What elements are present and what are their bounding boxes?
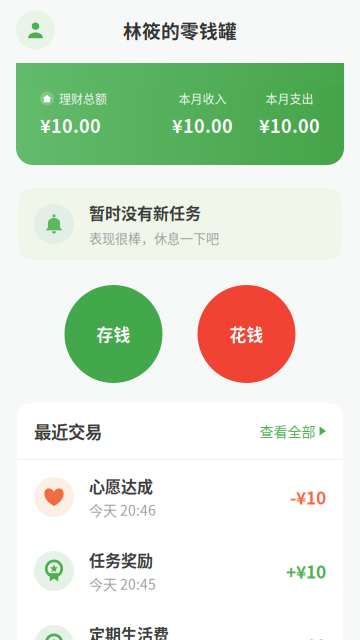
staticText: 本月支出	[265, 90, 313, 107]
staticText: ¥10.00	[172, 112, 233, 138]
staticText: 任务奖励	[89, 548, 153, 571]
staticText: ¥10.00	[40, 112, 101, 138]
button[interactable]: 花钱	[197, 285, 295, 383]
staticText: ¥10.00	[259, 112, 320, 138]
staticText: 定期生活费	[89, 622, 169, 640]
button[interactable]: 查看全部	[259, 421, 326, 441]
staticText: 今天 20:46	[89, 499, 156, 520]
button[interactable]: 暂时没有新任务	[18, 188, 342, 260]
button[interactable]: 任务奖励	[17, 534, 343, 608]
button[interactable]: 个人中心	[16, 10, 55, 49]
staticText: 表现很棒，休息一下吧	[89, 228, 219, 247]
staticText: 存钱	[96, 322, 130, 346]
button[interactable]: 心愿达成	[17, 460, 343, 534]
staticText: 最近交易	[34, 418, 102, 444]
staticText: 心愿达成	[89, 474, 153, 497]
staticText: 本月收入	[178, 90, 226, 107]
staticText: +¥10	[286, 558, 326, 584]
staticText: 花钱	[229, 322, 263, 346]
staticText: -¥10	[290, 484, 326, 510]
staticText: +¥10	[286, 632, 326, 640]
staticText: 理财总额	[59, 90, 107, 107]
staticText: 查看全部	[259, 421, 315, 441]
staticText: 今天 20:45	[89, 573, 156, 594]
button[interactable]: 存钱	[64, 285, 162, 383]
button[interactable]: 定期生活费	[17, 608, 343, 640]
staticText: 林筱的零钱罐	[123, 16, 237, 43]
staticText: 暂时没有新任务	[89, 201, 201, 224]
